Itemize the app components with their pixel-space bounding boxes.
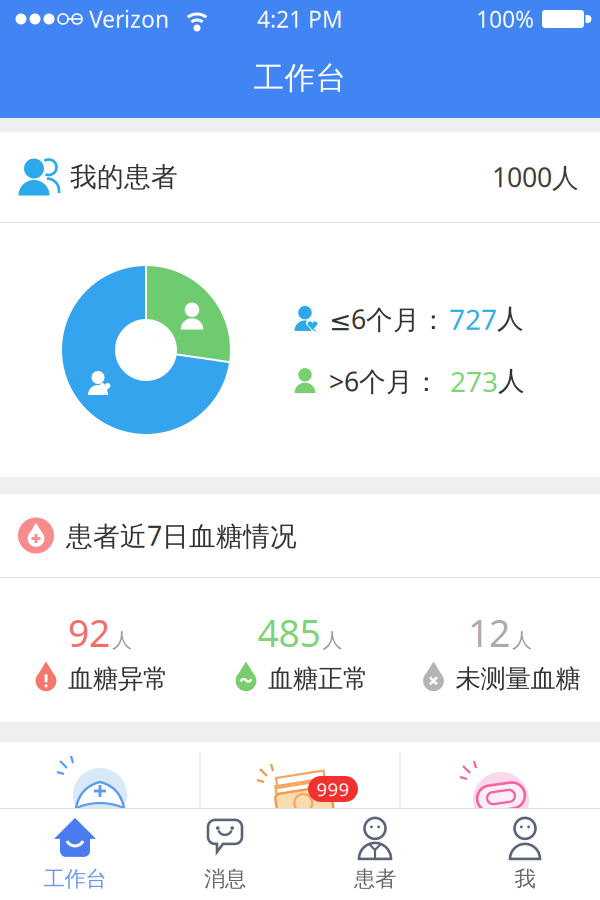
button[interactable]: 消息 (150, 809, 300, 900)
staticText: Verizon (89, 4, 169, 34)
staticText: 未测量血糖 (455, 663, 580, 694)
button[interactable]: 12 (400, 578, 600, 722)
staticText: 1000人 (492, 159, 579, 195)
button[interactable]: 我 (450, 809, 600, 900)
staticText: 999 (316, 777, 349, 801)
button[interactable]: 485 (200, 578, 400, 722)
staticText: 273 (450, 362, 498, 400)
staticText: 485 (257, 608, 320, 657)
staticText: 工作台 (253, 59, 346, 97)
staticText: 100% (476, 4, 534, 34)
button[interactable]: 92 (0, 578, 200, 722)
staticText: 患者 (354, 866, 396, 892)
button[interactable]: 消息卡片 (200, 742, 400, 808)
staticText: 人 (497, 302, 524, 335)
staticText: >6个月： (329, 363, 440, 399)
staticText: 患者近7日血糖情况 (66, 518, 297, 553)
button[interactable]: 护理服务 (0, 742, 200, 808)
staticText: 12 (468, 608, 510, 657)
staticText: 血糖正常 (268, 663, 368, 694)
staticText: 我的患者 (70, 161, 178, 193)
staticText: 人 (512, 628, 532, 653)
button[interactable]: 用药服务 (400, 742, 600, 808)
staticText: 人 (498, 365, 525, 397)
staticText: 血糖异常 (68, 663, 168, 694)
button[interactable]: 患者近7日血糖情况 (0, 494, 600, 577)
button[interactable]: 工作台 (0, 809, 150, 900)
staticText: 人 (112, 628, 132, 653)
staticText: 工作台 (43, 866, 106, 892)
staticText: ≤6个月： (329, 301, 447, 337)
staticText: 4:21 PM (257, 4, 343, 34)
button[interactable]: 我的患者 (0, 132, 600, 222)
button[interactable]: 患者 (300, 809, 450, 900)
staticText: 92 (68, 608, 110, 657)
staticText: 727 (449, 300, 497, 337)
staticText: 人 (322, 628, 342, 653)
staticText: 消息 (204, 866, 246, 892)
staticText: 我 (514, 866, 535, 892)
